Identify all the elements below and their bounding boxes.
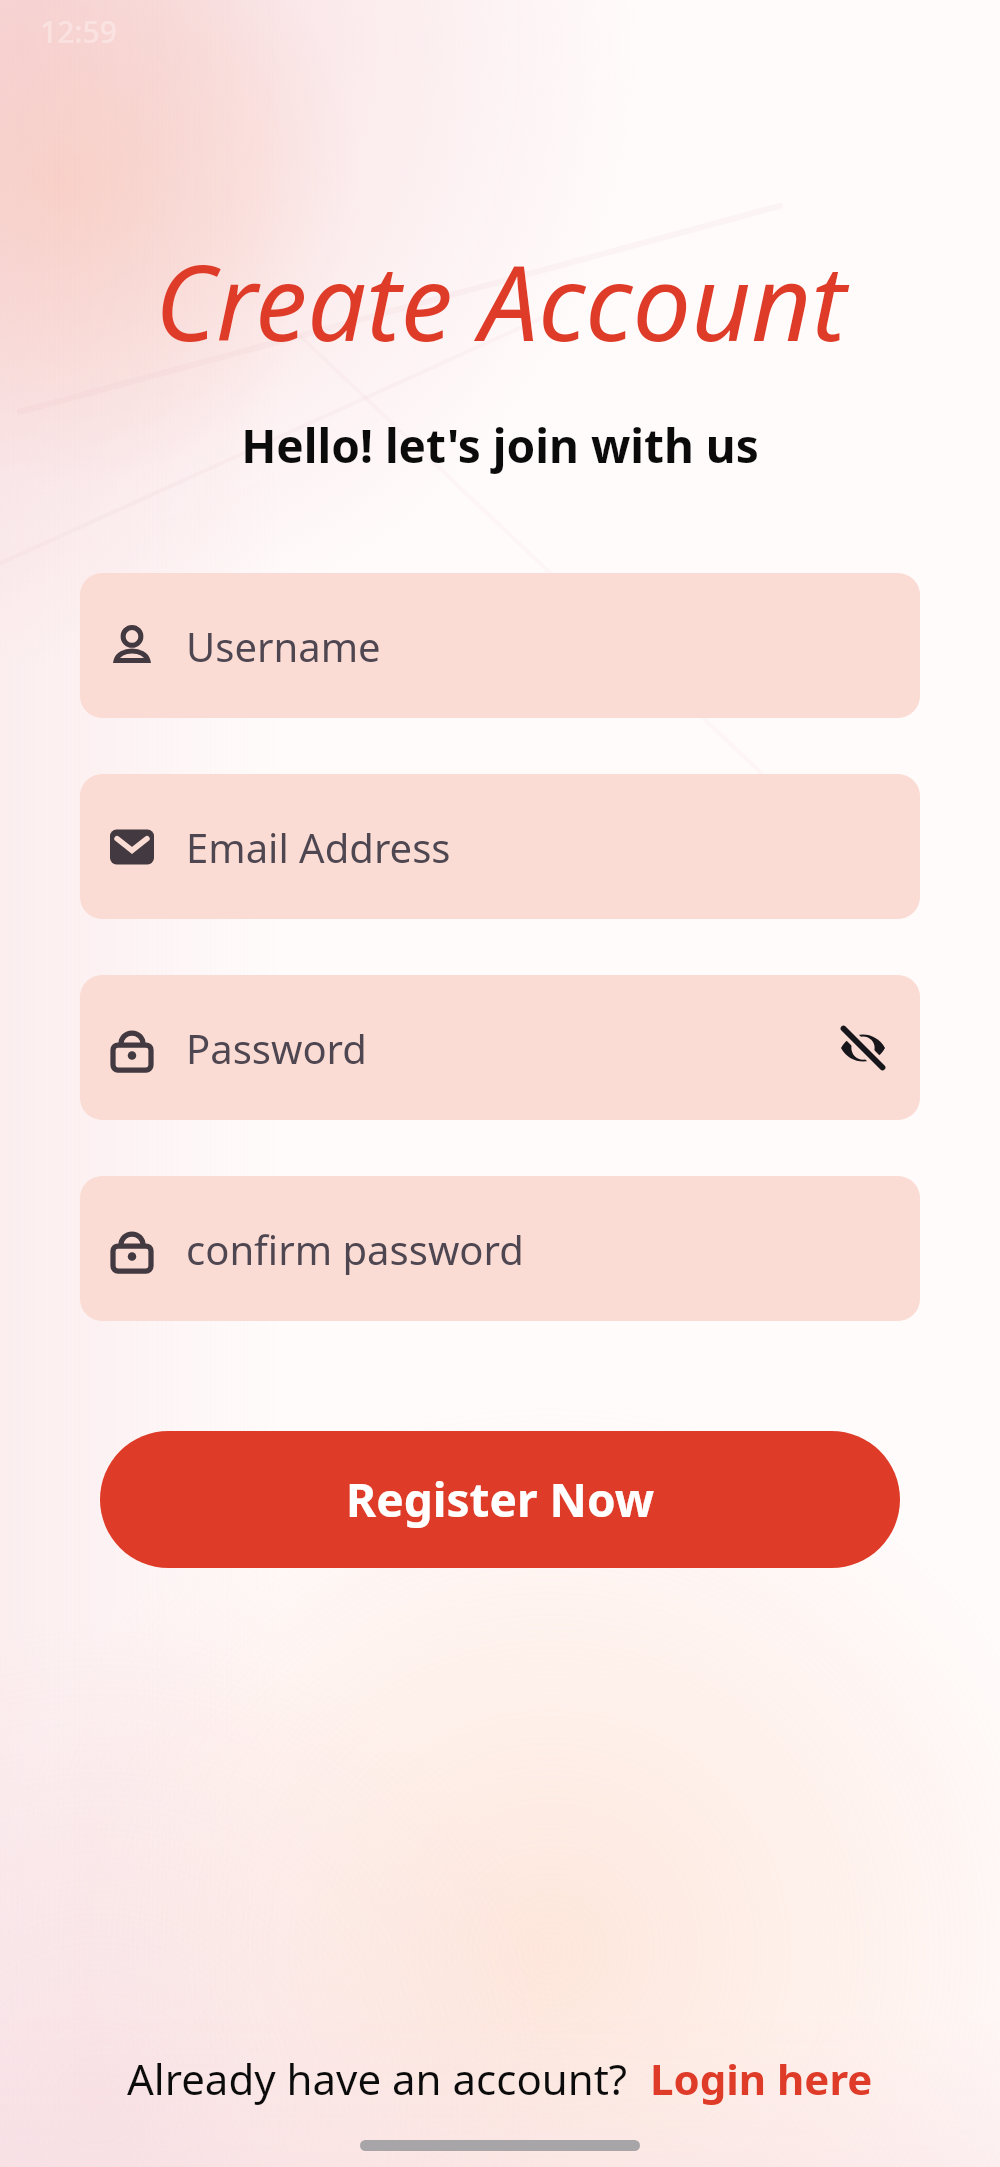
staticText: Already have an account? bbox=[127, 2050, 628, 2107]
button[interactable]: Login here bbox=[650, 2050, 873, 2107]
button[interactable]: Toggle password visibility bbox=[836, 1021, 890, 1075]
staticText: Password bbox=[186, 1021, 836, 1075]
staticText: Login here bbox=[650, 2050, 873, 2107]
staticText: Hello! let's join with us bbox=[241, 414, 759, 477]
button[interactable]: Register Now bbox=[100, 1431, 900, 1568]
staticText: 12:59 bbox=[40, 11, 117, 52]
staticText: confirm password bbox=[186, 1222, 890, 1276]
button[interactable]: Password bbox=[80, 975, 920, 1120]
staticText: Create Account bbox=[155, 230, 846, 372]
button[interactable]: Email Address bbox=[80, 774, 920, 919]
staticText: Username bbox=[186, 619, 890, 673]
button[interactable]: confirm password bbox=[80, 1176, 920, 1321]
staticText: Register Now bbox=[346, 1468, 655, 1531]
staticText: Email Address bbox=[186, 820, 890, 874]
button[interactable]: Username bbox=[80, 573, 920, 718]
